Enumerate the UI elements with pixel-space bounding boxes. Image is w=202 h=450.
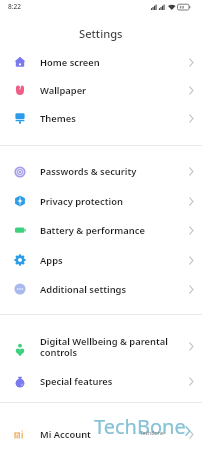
button[interactable]: Digital Wellbeing & parental controls [0, 329, 202, 364]
button[interactable]: Passwords & security [0, 157, 202, 186]
staticText: Wallpaper [40, 84, 87, 97]
staticText: Themes [40, 112, 76, 125]
staticText: Special features [40, 375, 113, 388]
button[interactable]: Mi Account [0, 419, 202, 450]
staticText: Settings [79, 26, 123, 41]
button[interactable]: Battery & performance [0, 215, 202, 245]
staticText: Privacy protection [40, 195, 123, 208]
button[interactable]: Home screen [0, 48, 202, 76]
staticText: Digital Wellbeing & parental controls [40, 335, 168, 359]
staticText: 8:22 [8, 2, 21, 11]
button[interactable]: Special features [0, 364, 202, 399]
staticText: Battery & performance [40, 224, 145, 237]
staticText: Additional settings [40, 283, 127, 296]
staticText: TechBone [140, 429, 164, 436]
staticText: Apps [40, 254, 63, 267]
button[interactable]: Wallpaper [0, 76, 202, 104]
button[interactable]: Apps [0, 245, 202, 275]
staticText: Passwords & security [40, 165, 137, 178]
staticText: Home screen [40, 56, 100, 69]
button[interactable]: Themes [0, 104, 202, 132]
button[interactable]: Privacy protection [0, 186, 202, 216]
staticText: Mi Account [40, 428, 91, 441]
button[interactable]: Additional settings [0, 274, 202, 304]
staticText: TechBone [94, 413, 186, 440]
